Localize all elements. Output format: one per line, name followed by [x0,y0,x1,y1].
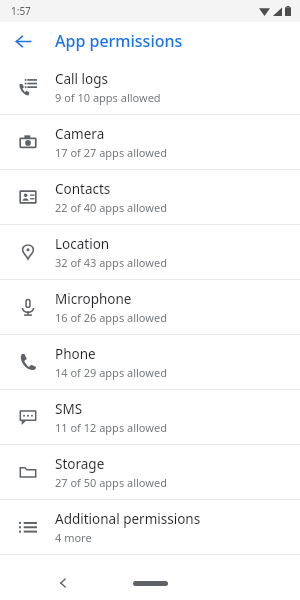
staticText: 16 of 26 apps allowed [55,310,167,325]
button[interactable]: Call logs [0,60,300,114]
staticText: 11 of 12 apps allowed [55,420,167,435]
button[interactable]: Storage [0,445,300,499]
button[interactable]: Phone [0,335,300,389]
button[interactable]: Back [50,570,76,596]
staticText: Call logs [55,70,109,88]
staticText: 1:57 [11,4,31,18]
staticText: 4 more [55,530,92,545]
button[interactable]: Additional permissions [0,500,300,554]
staticText: Camera [55,125,105,143]
staticText: Microphone [55,290,132,308]
staticText: 14 of 29 apps allowed [55,365,167,380]
staticText: App permissions [55,30,183,52]
button[interactable]: Back [6,24,40,58]
staticText: SMS [55,400,83,418]
button[interactable]: Location [0,225,300,279]
staticText: Location [55,235,110,253]
button[interactable]: Home [133,581,168,586]
staticText: 22 of 40 apps allowed [55,200,167,215]
staticText: 17 of 27 apps allowed [55,145,167,160]
staticText: Phone [55,345,96,363]
button[interactable]: Contacts [0,170,300,224]
staticText: 32 of 43 apps allowed [55,255,167,270]
staticText: Additional permissions [55,510,201,528]
staticText: Contacts [55,180,111,198]
button[interactable]: Camera [0,115,300,169]
button[interactable]: SMS [0,390,300,444]
staticText: Storage [55,455,105,473]
staticText: 9 of 10 apps allowed [55,90,161,105]
button[interactable]: Microphone [0,280,300,334]
staticText: 27 of 50 apps allowed [55,475,167,490]
